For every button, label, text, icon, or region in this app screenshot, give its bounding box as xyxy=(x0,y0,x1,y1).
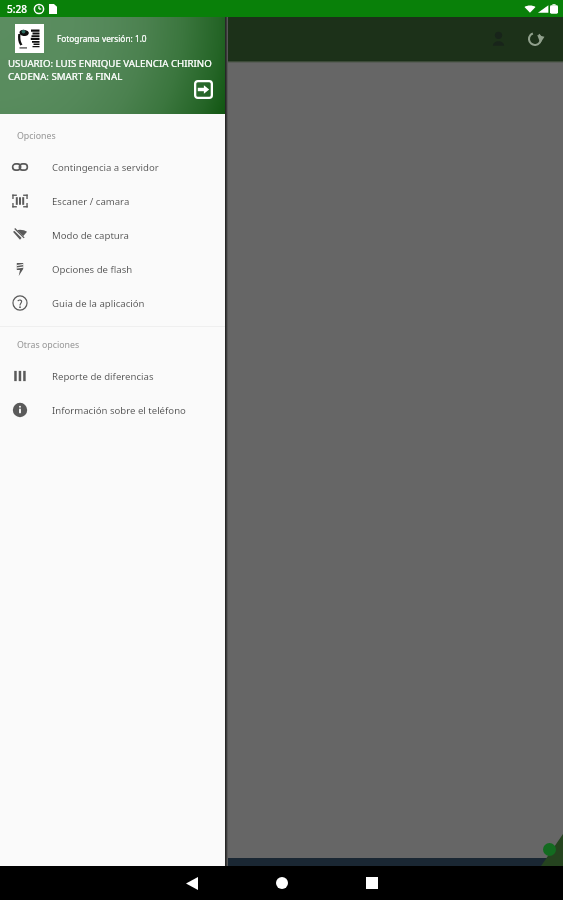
button[interactable]: Actualizar xyxy=(519,22,553,56)
button[interactable]: Usuario xyxy=(481,22,515,56)
staticText: Opciones de flash xyxy=(52,263,133,276)
staticText: Escaner / camara xyxy=(52,195,130,208)
staticText: Otras opciones xyxy=(17,339,80,351)
button[interactable]: Atrás xyxy=(169,866,215,900)
button[interactable]: Inicio xyxy=(259,866,305,900)
button[interactable]: Contingencia a servidor xyxy=(0,150,225,184)
button[interactable]: Recientes xyxy=(349,866,395,900)
staticText: Guia de la aplicación xyxy=(52,297,145,310)
staticText: 5:28 xyxy=(7,2,27,16)
button[interactable]: Cerrar sesión xyxy=(192,78,214,100)
button[interactable]: Opciones de flash xyxy=(0,252,225,286)
button[interactable]: Reporte de diferencias xyxy=(0,359,225,393)
staticText: CADENA: SMART & FINAL xyxy=(8,70,123,83)
button[interactable]: Escaner / camara xyxy=(0,184,225,218)
staticText: Información sobre el teléfono xyxy=(52,404,186,417)
staticText: Modo de captura xyxy=(52,229,129,242)
button[interactable]: Accion xyxy=(543,843,556,856)
button[interactable]: Información sobre el teléfono xyxy=(0,393,225,427)
button[interactable]: Guia de la aplicación xyxy=(0,286,225,320)
button[interactable]: Modo de captura xyxy=(0,218,225,252)
staticText: Reporte de diferencias xyxy=(52,370,154,383)
staticText: Opciones xyxy=(17,130,56,142)
staticText: Fotograma versión: 1.0 xyxy=(57,33,147,44)
staticText: Contingencia a servidor xyxy=(52,161,159,174)
staticText: USUARIO: LUIS ENRIQUE VALENCIA CHIRINO xyxy=(8,57,212,70)
